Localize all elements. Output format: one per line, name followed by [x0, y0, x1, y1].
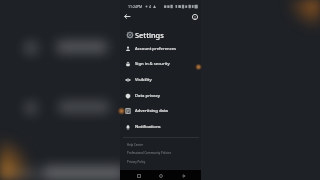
- button[interactable]: Home: [156, 171, 165, 180]
- button[interactable]: Advertising data: [120, 103, 201, 119]
- button[interactable]: Data privacy: [120, 88, 201, 104]
- button[interactable]: Help Center: [120, 140, 201, 149]
- button[interactable]: Visibility: [120, 72, 201, 88]
- button[interactable]: Notifications: [120, 119, 201, 135]
- button[interactable]: Help: [189, 11, 200, 22]
- staticText: 11:24PM: [128, 4, 143, 9]
- button[interactable]: Back: [122, 11, 133, 22]
- staticText: 4: [149, 4, 152, 9]
- button[interactable]: Professional Community Policies: [120, 148, 201, 157]
- staticText: Help Center: [127, 143, 144, 147]
- button[interactable]: Account preferences: [120, 41, 201, 57]
- staticText: Visibility: [135, 77, 152, 83]
- staticText: Advertising data: [135, 108, 168, 114]
- button[interactable]: Sign in & security: [120, 56, 201, 72]
- button[interactable]: Back: [179, 171, 188, 180]
- staticText: Sign in & security: [135, 61, 170, 67]
- staticText: Data privacy: [135, 93, 160, 99]
- button[interactable]: Privacy Policy: [120, 157, 201, 166]
- staticText: Account preferences: [135, 46, 177, 52]
- staticText: Settings: [135, 30, 164, 40]
- button[interactable]: Recents: [134, 171, 143, 180]
- staticText: Privacy Policy: [127, 160, 146, 164]
- staticText: Notifications: [135, 124, 161, 130]
- staticText: Professional Community Policies: [127, 151, 172, 155]
